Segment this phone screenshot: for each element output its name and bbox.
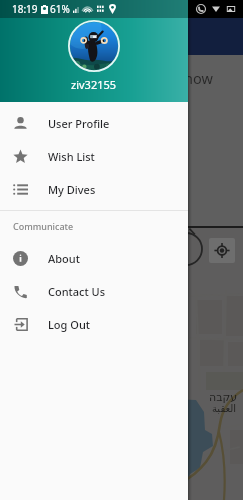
button[interactable]: Wish List — [0, 140, 188, 173]
button[interactable]: My location — [209, 238, 235, 263]
button[interactable]: About — [0, 242, 188, 275]
button[interactable]: User Profile — [0, 107, 188, 140]
staticText: Wish List — [48, 149, 95, 164]
staticText: Contact Us — [48, 284, 106, 299]
staticText: ziv32155 — [71, 77, 117, 92]
staticText: العقبة — [212, 403, 237, 415]
staticText: Log Out — [48, 317, 91, 332]
button[interactable]: Contact Us — [0, 275, 188, 308]
staticText: 18:19 — [12, 2, 38, 16]
button[interactable]: ziv32155 — [0, 0, 188, 102]
staticText: 61% — [50, 2, 70, 16]
button[interactable]: My Dives — [0, 173, 188, 206]
staticText: Communicate — [13, 220, 74, 232]
button[interactable]: Log Out — [0, 308, 188, 341]
staticText: User Profile — [48, 116, 110, 131]
staticText: now — [184, 68, 213, 88]
staticText: My Dives — [48, 182, 96, 197]
staticText: About — [48, 251, 80, 266]
staticText: עקבה — [209, 391, 238, 404]
